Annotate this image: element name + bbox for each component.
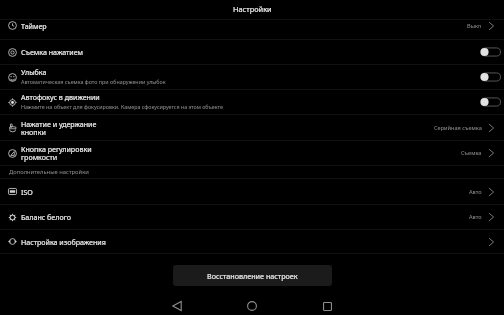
- staticText: Таймер: [21, 21, 47, 31]
- staticText: Настройки: [233, 4, 272, 14]
- button[interactable]: Home: [240, 294, 264, 315]
- button[interactable]: Кнопка регулировки громкости: [0, 141, 504, 165]
- staticText: Баланс белого: [21, 212, 71, 222]
- staticText: Автоматическая съемка фото при обнаружен…: [21, 78, 166, 85]
- button[interactable]: Автофокус в движении: [0, 90, 504, 114]
- button[interactable]: Восстановление настроек: [173, 265, 332, 286]
- staticText: Авто: [469, 213, 482, 221]
- staticText: Серийная съемка: [434, 124, 482, 132]
- button[interactable]: ISO: [0, 179, 504, 204]
- staticText: Нажатие и удержание кнопки: [21, 119, 97, 137]
- button[interactable]: Back: [165, 294, 189, 315]
- button[interactable]: Toggle Улыбка: [477, 70, 501, 84]
- staticText: Нажмите на объект для фокусировки. Камер…: [21, 103, 223, 110]
- button[interactable]: Toggle Съемка нажатием: [477, 45, 501, 59]
- button[interactable]: Съемка нажатием: [0, 40, 504, 64]
- button[interactable]: Улыбка: [0, 65, 504, 89]
- button[interactable]: Нажатие и удержание кнопки: [0, 115, 504, 140]
- button[interactable]: Toggle Автофокус в движении: [477, 95, 501, 109]
- button[interactable]: Баланс белого: [0, 205, 504, 229]
- button[interactable]: Recents: [315, 294, 339, 315]
- staticText: Автофокус в движении: [21, 92, 100, 102]
- staticText: Настройка изображения: [21, 237, 106, 247]
- staticText: Съемка: [461, 149, 482, 157]
- staticText: Съемка нажатием: [21, 47, 84, 57]
- button[interactable]: Настройка изображения: [0, 230, 504, 253]
- button[interactable]: Таймер: [0, 20, 504, 39]
- staticText: ISO: [21, 187, 33, 197]
- staticText: Восстановление настроек: [207, 271, 298, 281]
- staticText: Дополнительные настройки: [9, 168, 89, 176]
- staticText: Кнопка регулировки громкости: [21, 144, 92, 162]
- staticText: Авто: [469, 188, 482, 196]
- staticText: Выкл: [467, 22, 482, 30]
- staticText: Улыбка: [21, 67, 47, 77]
